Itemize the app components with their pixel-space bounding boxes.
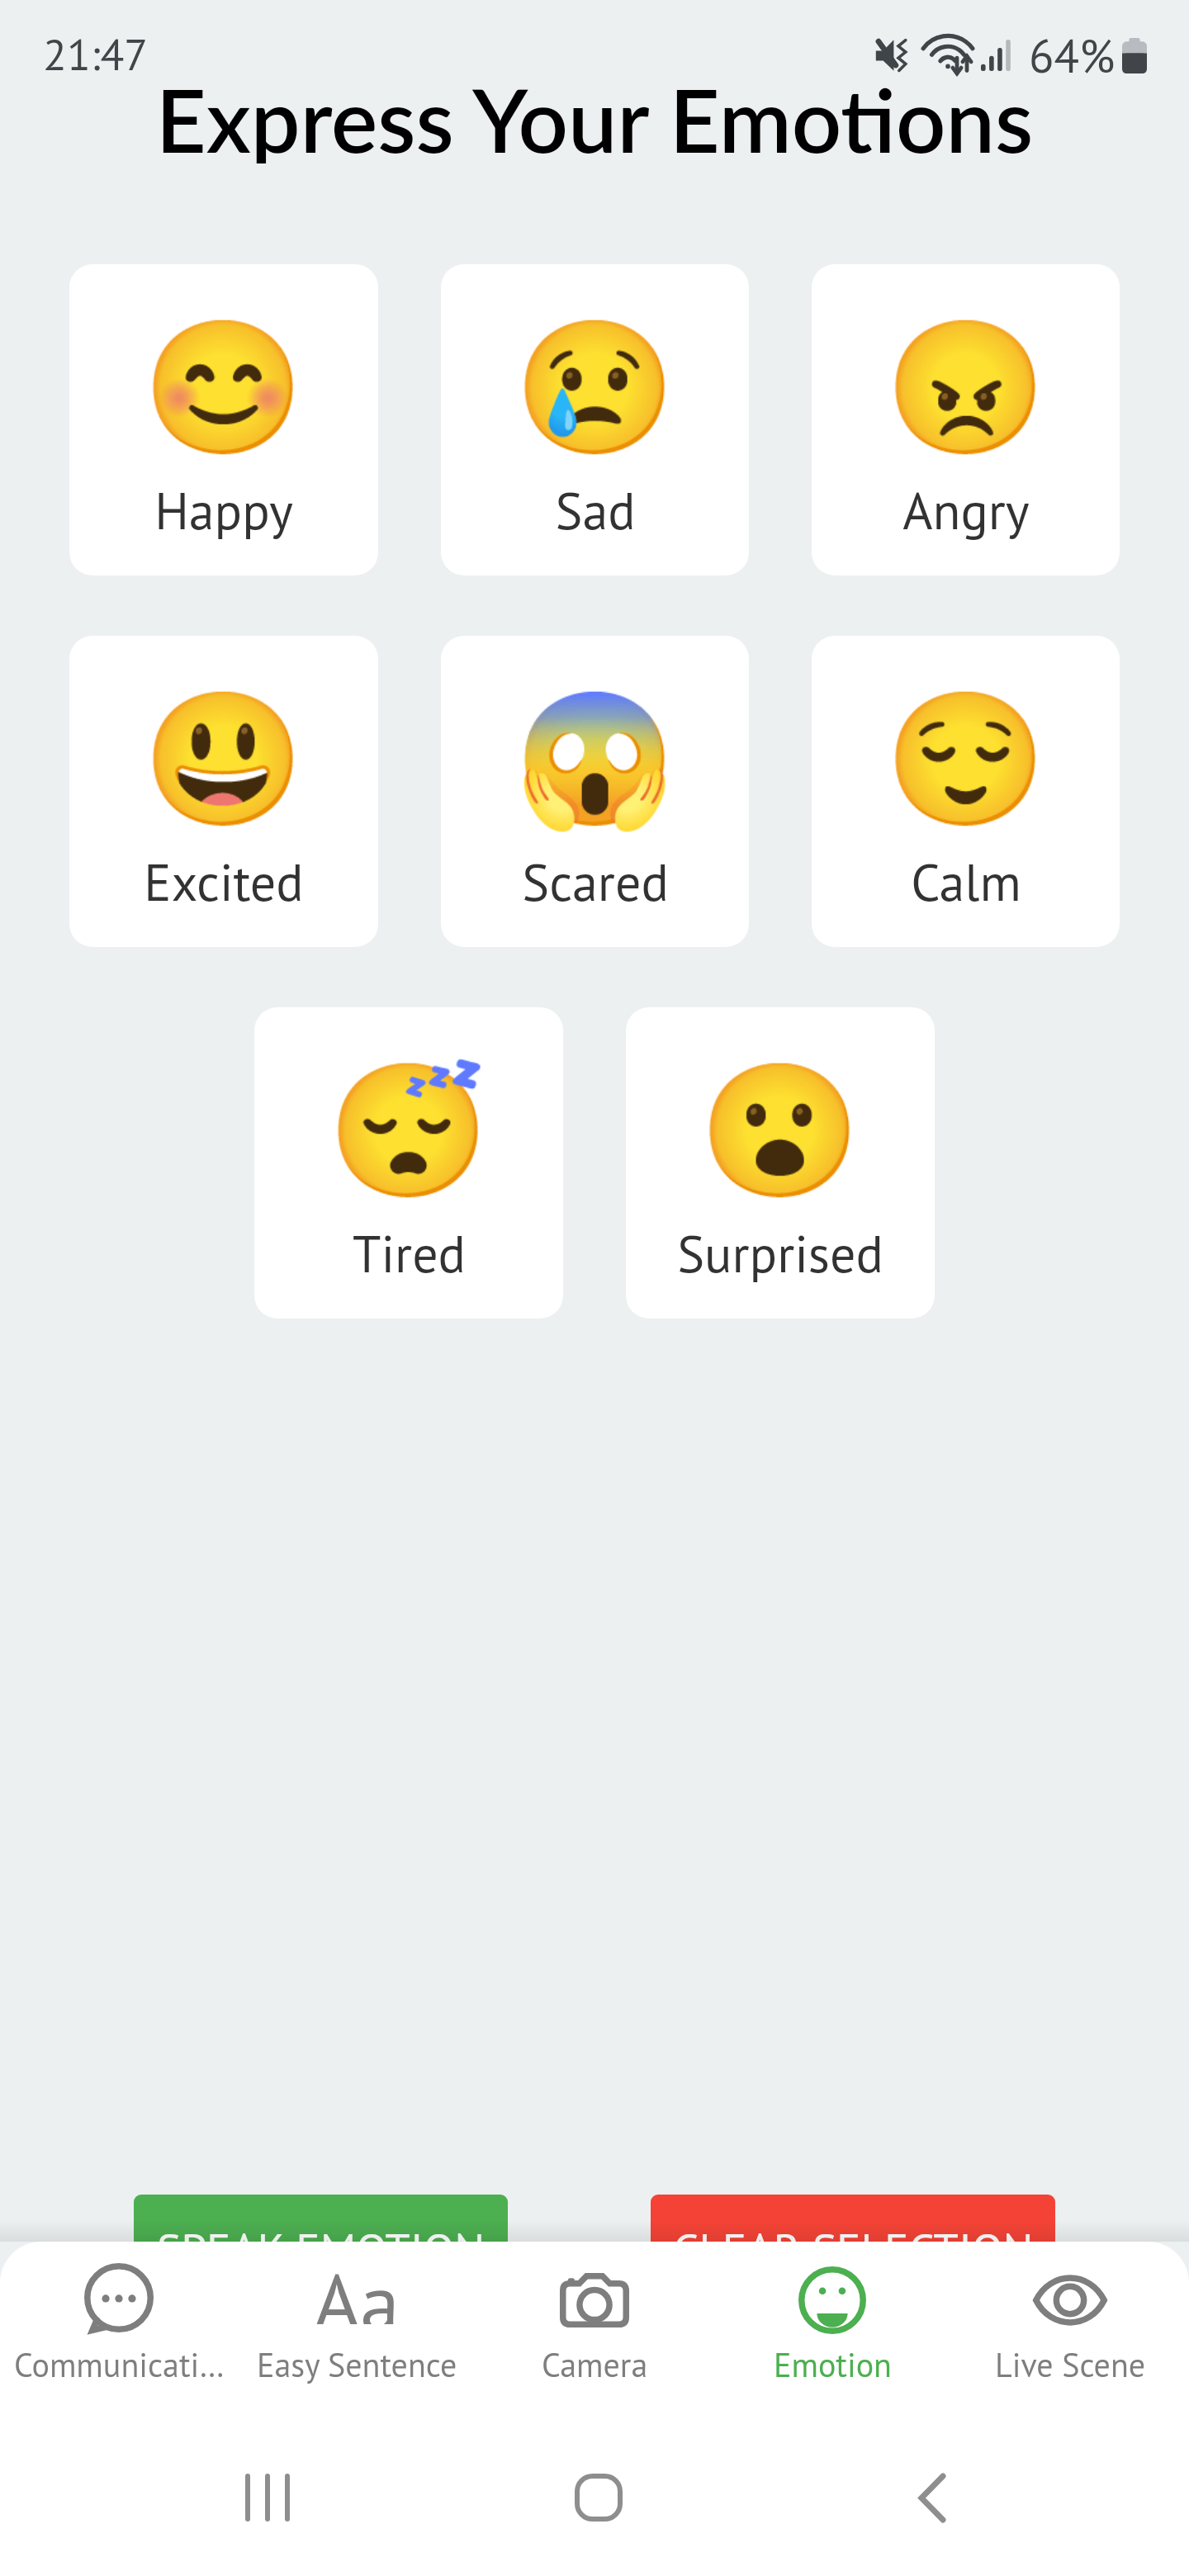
- button[interactable]: Communicati…: [0, 2242, 238, 2386]
- staticText: Surprised: [677, 1220, 883, 1286]
- staticText: Calm: [911, 849, 1021, 915]
- staticText: Sad: [555, 477, 636, 543]
- staticText: 😌: [884, 684, 1048, 837]
- staticText: Express Your Emotions: [0, 66, 1189, 163]
- staticText: Excited: [144, 849, 304, 915]
- staticText: Aa: [314, 2250, 400, 2324]
- button[interactable]: 😱: [441, 636, 749, 947]
- staticText: 😱: [514, 684, 677, 837]
- button[interactable]: Live Scene: [951, 2242, 1189, 2386]
- button[interactable]: Recent apps: [214, 2444, 321, 2551]
- staticText: 😴: [327, 1055, 490, 1209]
- staticText: 21:47: [43, 26, 149, 83]
- staticText: SPEAK EMOTION: [157, 2219, 486, 2278]
- button[interactable]: 😠: [812, 264, 1120, 575]
- staticText: Scared: [522, 849, 669, 915]
- staticText: Tired: [353, 1220, 466, 1286]
- button[interactable]: Home: [545, 2444, 652, 2551]
- staticText: Communicati…: [14, 2343, 225, 2386]
- button[interactable]: Back: [879, 2444, 986, 2551]
- button[interactable]: CLEAR SELECTION: [651, 2195, 1055, 2302]
- staticText: Angry: [902, 477, 1030, 543]
- staticText: Camera: [542, 2343, 648, 2386]
- button[interactable]: Camera: [476, 2242, 713, 2386]
- button[interactable]: 😮: [626, 1007, 935, 1319]
- button[interactable]: 😃: [69, 636, 378, 947]
- staticText: Live Scene: [995, 2343, 1146, 2386]
- button[interactable]: Emotion: [713, 2242, 951, 2386]
- staticText: 64%: [1029, 26, 1116, 85]
- staticText: 😢: [514, 312, 677, 466]
- button[interactable]: 😴: [254, 1007, 563, 1319]
- button[interactable]: 😊: [69, 264, 378, 575]
- staticText: Easy Sentence: [257, 2343, 457, 2386]
- staticText: 😮: [699, 1055, 862, 1209]
- button[interactable]: 😌: [812, 636, 1120, 947]
- staticText: 😠: [884, 312, 1048, 466]
- button[interactable]: 😢: [441, 264, 749, 575]
- staticText: Emotion: [774, 2343, 892, 2386]
- staticText: 😊: [142, 312, 306, 466]
- button[interactable]: Aa: [238, 2242, 476, 2386]
- staticText: CLEAR SELECTION: [673, 2219, 1034, 2278]
- staticText: 😃: [142, 684, 306, 837]
- button[interactable]: SPEAK EMOTION: [134, 2195, 508, 2302]
- staticText: Happy: [154, 477, 293, 543]
